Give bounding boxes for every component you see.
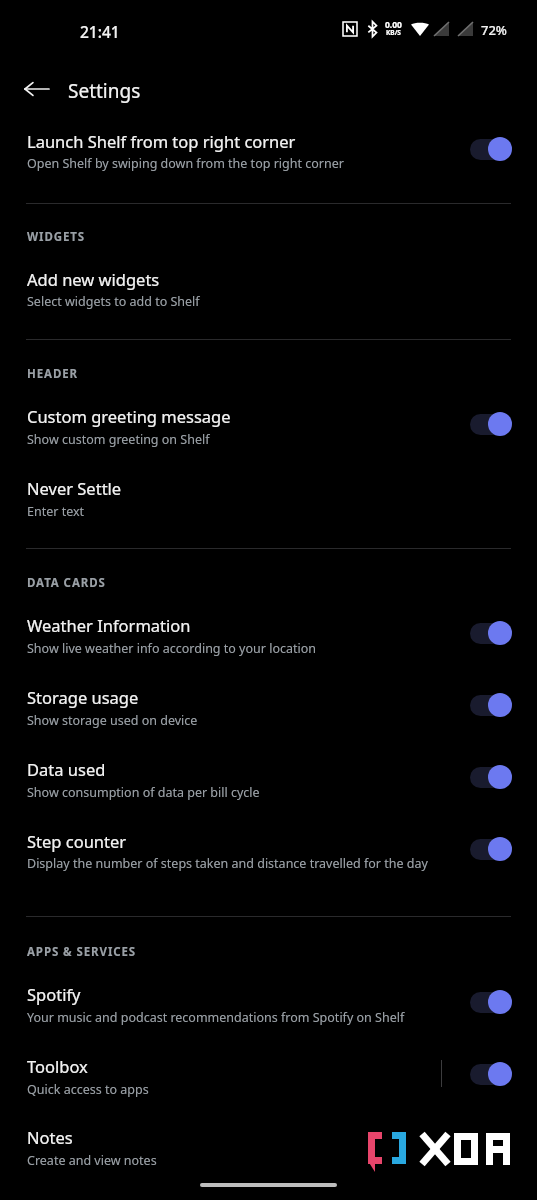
staticText: Create and view notes [27,1152,157,1169]
button[interactable] [0,256,537,318]
staticText: Never Settle [27,477,122,499]
button[interactable] [0,1043,537,1105]
button[interactable] [0,465,537,527]
staticText: Notes [27,1126,73,1148]
button[interactable]: Back [16,72,60,106]
staticText: Display the number of steps taken and di… [27,855,428,872]
staticText: 72% [481,21,507,39]
button[interactable] [0,971,537,1033]
staticText: Show storage used on device [27,712,198,729]
staticText: DATA CARDS [27,575,106,591]
staticText: Show live weather info according to your… [27,640,317,657]
staticText: Data used [27,758,106,780]
staticText: Show consumption of data per bill cycle [27,784,260,801]
staticText: Launch Shelf from top right corner [27,130,296,152]
button[interactable]: Toggle [468,620,514,646]
button[interactable]: Toggle [468,411,514,437]
staticText: HEADER [27,366,78,382]
staticText: Step counter [27,830,127,852]
staticText: 0.00 [385,19,402,31]
button[interactable]: Toggle [468,836,514,862]
button[interactable] [0,393,537,455]
button[interactable] [0,818,537,880]
staticText: Your music and podcast recommendations f… [27,1009,405,1026]
staticText: 21:41 [80,21,120,42]
staticText: Open Shelf by swiping down from the top … [27,155,344,172]
button[interactable] [0,746,537,808]
button[interactable]: Toggle [468,1061,514,1087]
staticText: WIDGETS [27,229,86,245]
staticText: Select widgets to add to Shelf [27,293,200,310]
button[interactable] [0,602,537,664]
button[interactable] [0,674,537,736]
staticText: Settings [68,78,141,104]
button[interactable] [0,1114,537,1172]
staticText: Add new widgets [27,268,160,290]
button[interactable]: Toggle [468,136,514,162]
button[interactable]: Toggle [468,764,514,790]
staticText: Spotify [27,983,81,1005]
staticText: Weather Information [27,614,191,636]
button[interactable]: Toggle [468,989,514,1015]
staticText: Custom greeting message [27,405,231,427]
staticText: Toolbox [27,1055,88,1077]
button[interactable]: Toggle [468,692,514,718]
staticText: Storage usage [27,686,139,708]
staticText: Enter text [27,503,85,520]
staticText: APPS & SERVICES [27,944,137,960]
staticText: Show custom greeting on Shelf [27,431,210,448]
staticText: Quick access to apps [27,1081,149,1098]
staticText: KB/S [386,28,401,37]
button[interactable] [0,118,537,186]
